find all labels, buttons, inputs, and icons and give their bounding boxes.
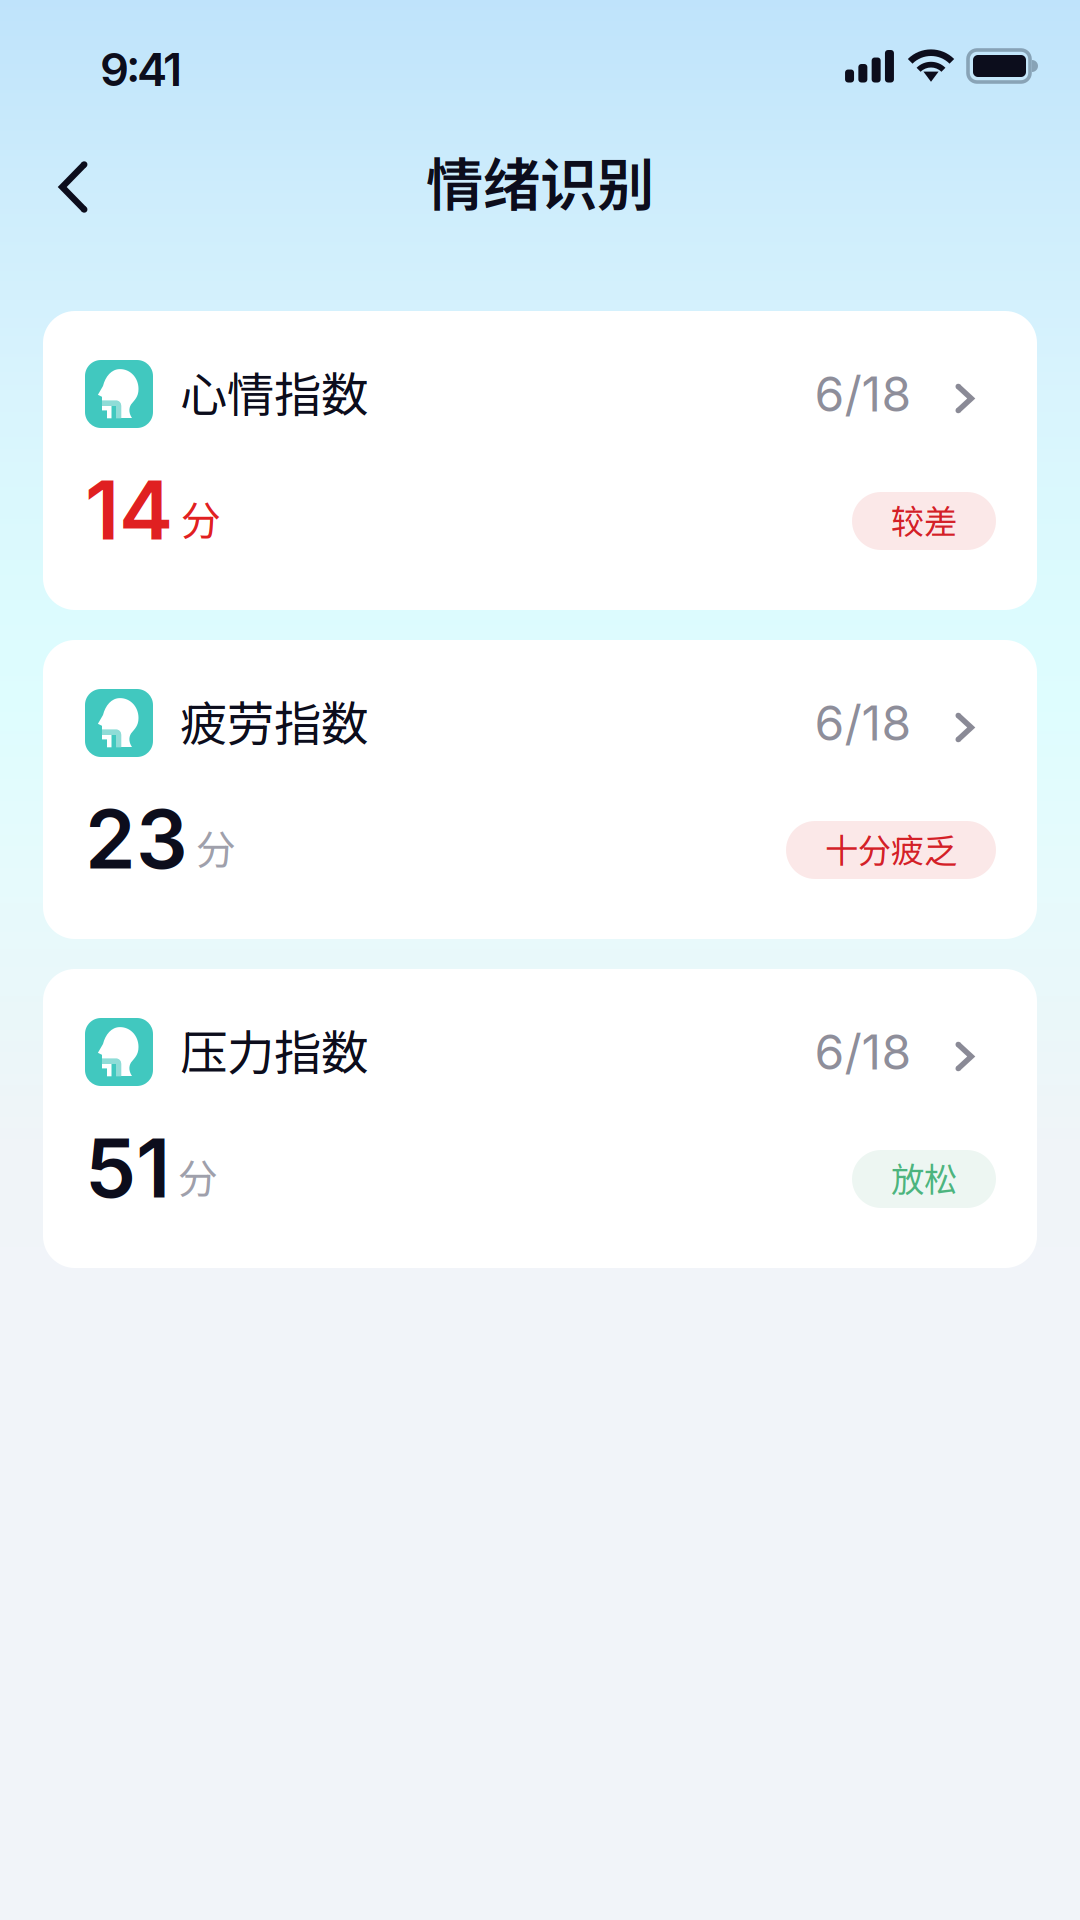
staticText: 较差 <box>891 501 957 541</box>
staticText: 23 <box>85 790 188 888</box>
staticText: 情绪识别 <box>426 150 654 218</box>
staticText: 分 <box>196 826 236 873</box>
staticText: 分 <box>178 1155 218 1202</box>
staticText: 6/18 <box>814 365 911 423</box>
button[interactable]: Back <box>0 140 132 244</box>
staticText: 十分疲乏 <box>825 830 957 870</box>
button[interactable]: 压力指数 <box>43 969 1037 1268</box>
staticText: 6/18 <box>814 694 911 752</box>
staticText: 心情指数 <box>180 366 368 422</box>
button[interactable]: 疲劳指数 <box>43 640 1037 939</box>
staticText: 压力指数 <box>180 1024 368 1080</box>
staticText: 14 <box>85 461 173 559</box>
staticText: 9:41 <box>100 42 182 97</box>
button[interactable]: 心情指数 <box>43 311 1037 610</box>
staticText: 分 <box>181 497 221 544</box>
staticText: 放松 <box>891 1159 957 1199</box>
staticText: 51 <box>85 1119 170 1217</box>
staticText: 6/18 <box>814 1023 911 1081</box>
staticText: 疲劳指数 <box>180 695 368 751</box>
